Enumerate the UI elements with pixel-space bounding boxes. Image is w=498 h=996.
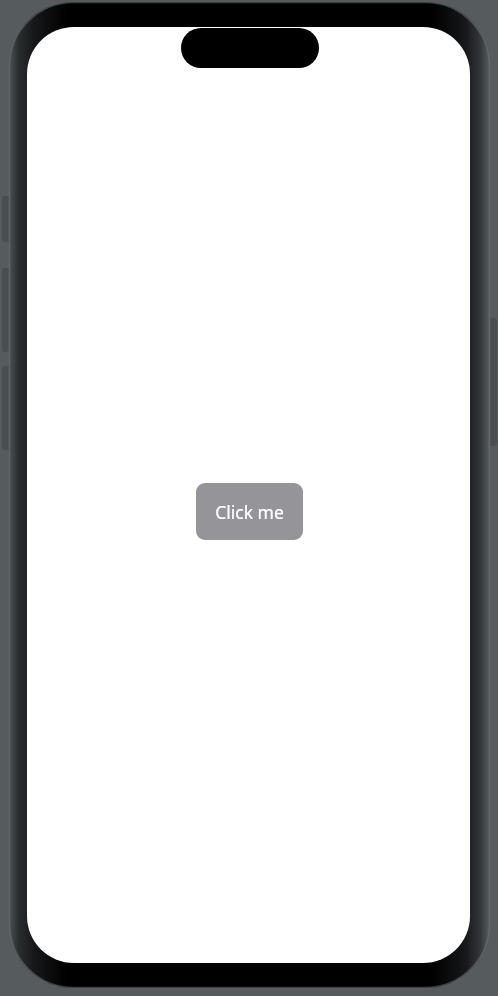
staticText: Click me (215, 500, 284, 524)
other: Dynamic Island (181, 28, 319, 68)
button[interactable]: Click me (196, 483, 303, 540)
